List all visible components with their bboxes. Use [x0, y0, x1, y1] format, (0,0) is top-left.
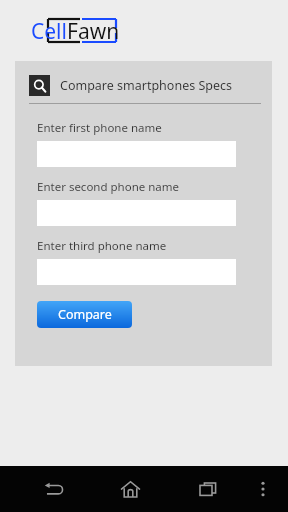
button[interactable]: Back	[16, 466, 92, 512]
staticText: Enter first phone name	[37, 120, 162, 136]
staticText: Compare smartphones Specs	[60, 77, 233, 94]
button[interactable]: Search	[29, 75, 50, 96]
staticText: Cell	[31, 17, 67, 46]
button[interactable]: More options	[246, 466, 280, 512]
staticText: Enter second phone name	[37, 179, 180, 195]
button[interactable]: Home	[92, 466, 169, 512]
button[interactable]: Compare	[37, 301, 132, 328]
staticText: Compare	[58, 306, 112, 323]
button[interactable]: Search	[29, 75, 262, 96]
button[interactable]: Recent apps	[169, 466, 246, 512]
staticText: Fawn	[67, 17, 120, 46]
staticText: Enter third phone name	[37, 238, 167, 254]
